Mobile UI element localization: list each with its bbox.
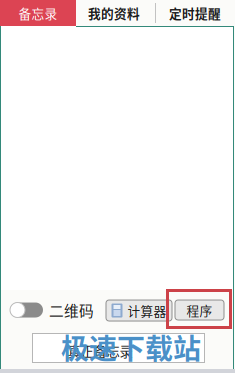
button[interactable]: 定时提醒 bbox=[156, 0, 234, 26]
staticText: 定时提醒 bbox=[169, 4, 221, 22]
staticText: 计算器 bbox=[127, 301, 166, 320]
staticText: 极速下载站 bbox=[61, 327, 201, 367]
button[interactable]: 二维码 bbox=[10, 299, 95, 321]
staticText: 备忘录 bbox=[18, 4, 57, 22]
button[interactable]: 我的资料 bbox=[75, 0, 153, 26]
button[interactable]: 程序 bbox=[175, 300, 224, 320]
button[interactable]: 备忘录 bbox=[0, 0, 76, 26]
staticText: 我的资料 bbox=[88, 4, 140, 22]
staticText: 二维码 bbox=[49, 299, 94, 321]
staticText: 程序 bbox=[186, 301, 212, 319]
staticText: 真正备忘录 bbox=[67, 341, 132, 361]
button[interactable]: 计算器 bbox=[106, 300, 172, 321]
